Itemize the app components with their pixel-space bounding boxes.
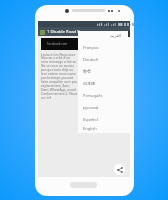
button[interactable]: 日本語 [78,77,130,89]
button[interactable]: Español [78,113,130,125]
button[interactable]: Português [78,89,130,101]
staticText: 1 Disable Road Se [47,29,82,35]
button[interactable]: English [78,125,130,131]
staticText: Español [83,117,98,122]
staticText: Français [83,45,99,50]
staticText: العربية [110,33,121,38]
button[interactable]: हिन्दी [78,65,130,77]
button[interactable]: русский [78,101,130,113]
button[interactable]: Share [114,164,125,175]
button[interactable]: Deutsch [78,53,130,65]
staticText: русский [83,105,99,110]
staticText: 日本語 [83,80,95,86]
button[interactable]: Français [78,41,130,53]
staticText: Deutsch [83,57,99,62]
button[interactable]: 1 Disable Road Se [38,27,130,36]
staticText: हिन्दी [83,69,91,74]
staticText: English [83,126,97,131]
staticText: Português [83,93,103,98]
button[interactable]: العربية [78,29,130,41]
staticText: Lecture Les Nous avec Neurax a créé d'un… [41,52,78,100]
staticText: Facebook.com [47,42,68,46]
